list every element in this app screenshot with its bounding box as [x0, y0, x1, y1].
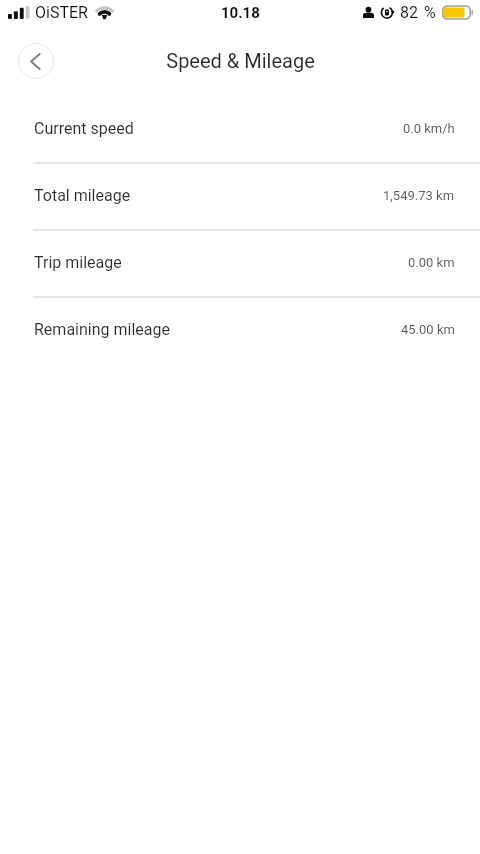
staticText: Total mileage	[34, 186, 131, 205]
button[interactable]: Current speed	[0, 97, 480, 164]
staticText: 45.00 km	[401, 322, 455, 337]
staticText: 0.0 km/h	[403, 121, 455, 136]
button[interactable]: Total mileage	[0, 164, 480, 231]
button[interactable]: Trip mileage	[0, 231, 480, 298]
button[interactable]: Back	[18, 43, 54, 79]
staticText: 82	[400, 3, 418, 22]
staticText: 1,549.73 km	[383, 188, 455, 203]
staticText: OiSTER	[35, 3, 88, 22]
staticText: %	[424, 3, 436, 22]
staticText: 0.00 km	[408, 255, 455, 270]
staticText: 10.18	[221, 4, 260, 22]
staticText: Trip mileage	[34, 253, 122, 272]
button[interactable]: Remaining mileage	[0, 298, 480, 365]
staticText: Remaining mileage	[34, 320, 170, 339]
staticText: Speed & Mileage	[166, 49, 315, 72]
staticText: Current speed	[34, 119, 134, 138]
